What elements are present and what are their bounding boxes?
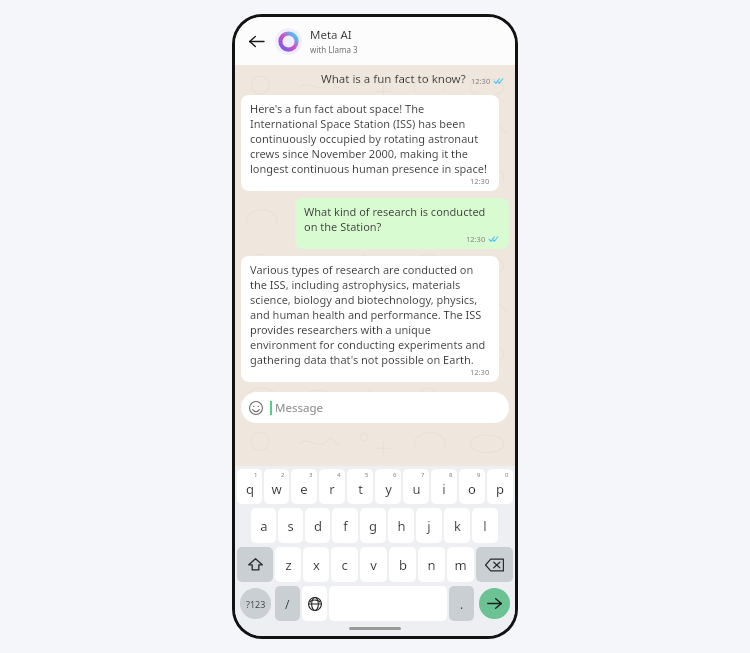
button[interactable]: 2: [264, 469, 289, 504]
button[interactable]: b: [389, 547, 416, 582]
staticText: z: [285, 556, 292, 574]
button[interactable]: z: [275, 547, 301, 582]
staticText: What kind of research is conducted on th…: [304, 204, 500, 234]
staticText: m: [454, 556, 467, 574]
button[interactable]: l: [472, 508, 498, 543]
staticText: a: [260, 517, 268, 535]
staticText: t: [358, 480, 363, 498]
staticText: u: [412, 480, 421, 498]
staticText: 4: [337, 471, 341, 479]
button[interactable]: v: [360, 547, 387, 582]
button[interactable]: c: [331, 547, 358, 582]
staticText: p: [496, 480, 504, 498]
staticText: .: [460, 596, 464, 612]
button[interactable]: Change keyboard language: [302, 586, 327, 621]
button[interactable]: Message: [241, 392, 509, 423]
button[interactable]: What is a fun fact to know?: [241, 69, 509, 89]
staticText: 12:30: [470, 367, 490, 377]
staticText: 7: [421, 471, 425, 479]
staticText: l: [483, 517, 487, 535]
staticText: q: [246, 480, 254, 498]
staticText: w: [271, 480, 282, 498]
staticText: Various types of research are conducted …: [250, 262, 490, 367]
staticText: o: [468, 480, 476, 498]
staticText: e: [300, 480, 308, 498]
staticText: y: [385, 480, 392, 498]
staticText: ?123: [246, 598, 266, 610]
staticText: 5: [365, 471, 369, 479]
staticText: g: [369, 517, 377, 535]
button[interactable]: 4: [319, 469, 345, 504]
staticText: What is a fun fact to know?: [321, 71, 466, 87]
button[interactable]: 9: [459, 469, 485, 504]
staticText: 12:30: [470, 176, 490, 186]
button[interactable]: Send: [479, 588, 510, 619]
staticText: h: [397, 517, 406, 535]
staticText: f: [343, 517, 348, 535]
button[interactable]: k: [444, 508, 470, 543]
staticText: x: [313, 556, 320, 574]
button[interactable]: a: [251, 508, 276, 543]
staticText: i: [442, 480, 446, 498]
button[interactable]: n: [418, 547, 445, 582]
staticText: Message: [275, 400, 323, 416]
button[interactable]: d: [305, 508, 330, 543]
staticText: r: [329, 480, 335, 498]
button[interactable]: 0: [487, 469, 513, 504]
button[interactable]: 6: [375, 469, 401, 504]
staticText: 6: [393, 471, 397, 479]
button[interactable]: x: [303, 547, 329, 582]
staticText: 3: [309, 471, 313, 479]
button[interactable]: 3: [291, 469, 317, 504]
staticText: 0: [505, 471, 509, 479]
staticText: 9: [477, 471, 481, 479]
button[interactable]: f: [332, 508, 358, 543]
button[interactable]: 8: [431, 469, 457, 504]
button[interactable]: s: [278, 508, 303, 543]
button[interactable]: 7: [403, 469, 429, 504]
button[interactable]: Here's a fun fact about space! The Inter…: [241, 95, 499, 191]
staticText: v: [370, 556, 377, 574]
staticText: c: [341, 556, 348, 574]
staticText: b: [399, 556, 407, 574]
button[interactable]: Shift: [237, 547, 273, 582]
button[interactable]: 5: [347, 469, 373, 504]
staticText: Here's a fun fact about space! The Inter…: [250, 101, 490, 176]
button[interactable]: Backspace: [476, 547, 513, 582]
staticText: d: [314, 517, 322, 535]
button[interactable]: m: [447, 547, 474, 582]
staticText: 12:30: [471, 76, 491, 86]
staticText: 1: [254, 471, 258, 479]
button[interactable]: 1: [237, 469, 262, 504]
staticText: /: [285, 596, 290, 612]
button[interactable]: g: [360, 508, 386, 543]
button[interactable]: j: [416, 508, 442, 543]
button[interactable]: Various types of research are conducted …: [241, 256, 499, 382]
button[interactable]: /: [275, 586, 300, 621]
button[interactable]: What kind of research is conducted on th…: [295, 198, 509, 249]
button[interactable]: h: [388, 508, 414, 543]
staticText: with Llama 3: [310, 44, 358, 55]
staticText: n: [427, 556, 436, 574]
button[interactable]: .: [449, 586, 474, 621]
staticText: Meta AI: [310, 27, 352, 43]
staticText: s: [287, 517, 294, 535]
staticText: 2: [281, 471, 285, 479]
staticText: 8: [449, 471, 453, 479]
staticText: 12:30: [466, 234, 486, 244]
button[interactable]: Back: [243, 28, 269, 54]
staticText: j: [427, 517, 431, 535]
button[interactable]: ?123: [240, 588, 271, 619]
staticText: k: [454, 517, 461, 535]
